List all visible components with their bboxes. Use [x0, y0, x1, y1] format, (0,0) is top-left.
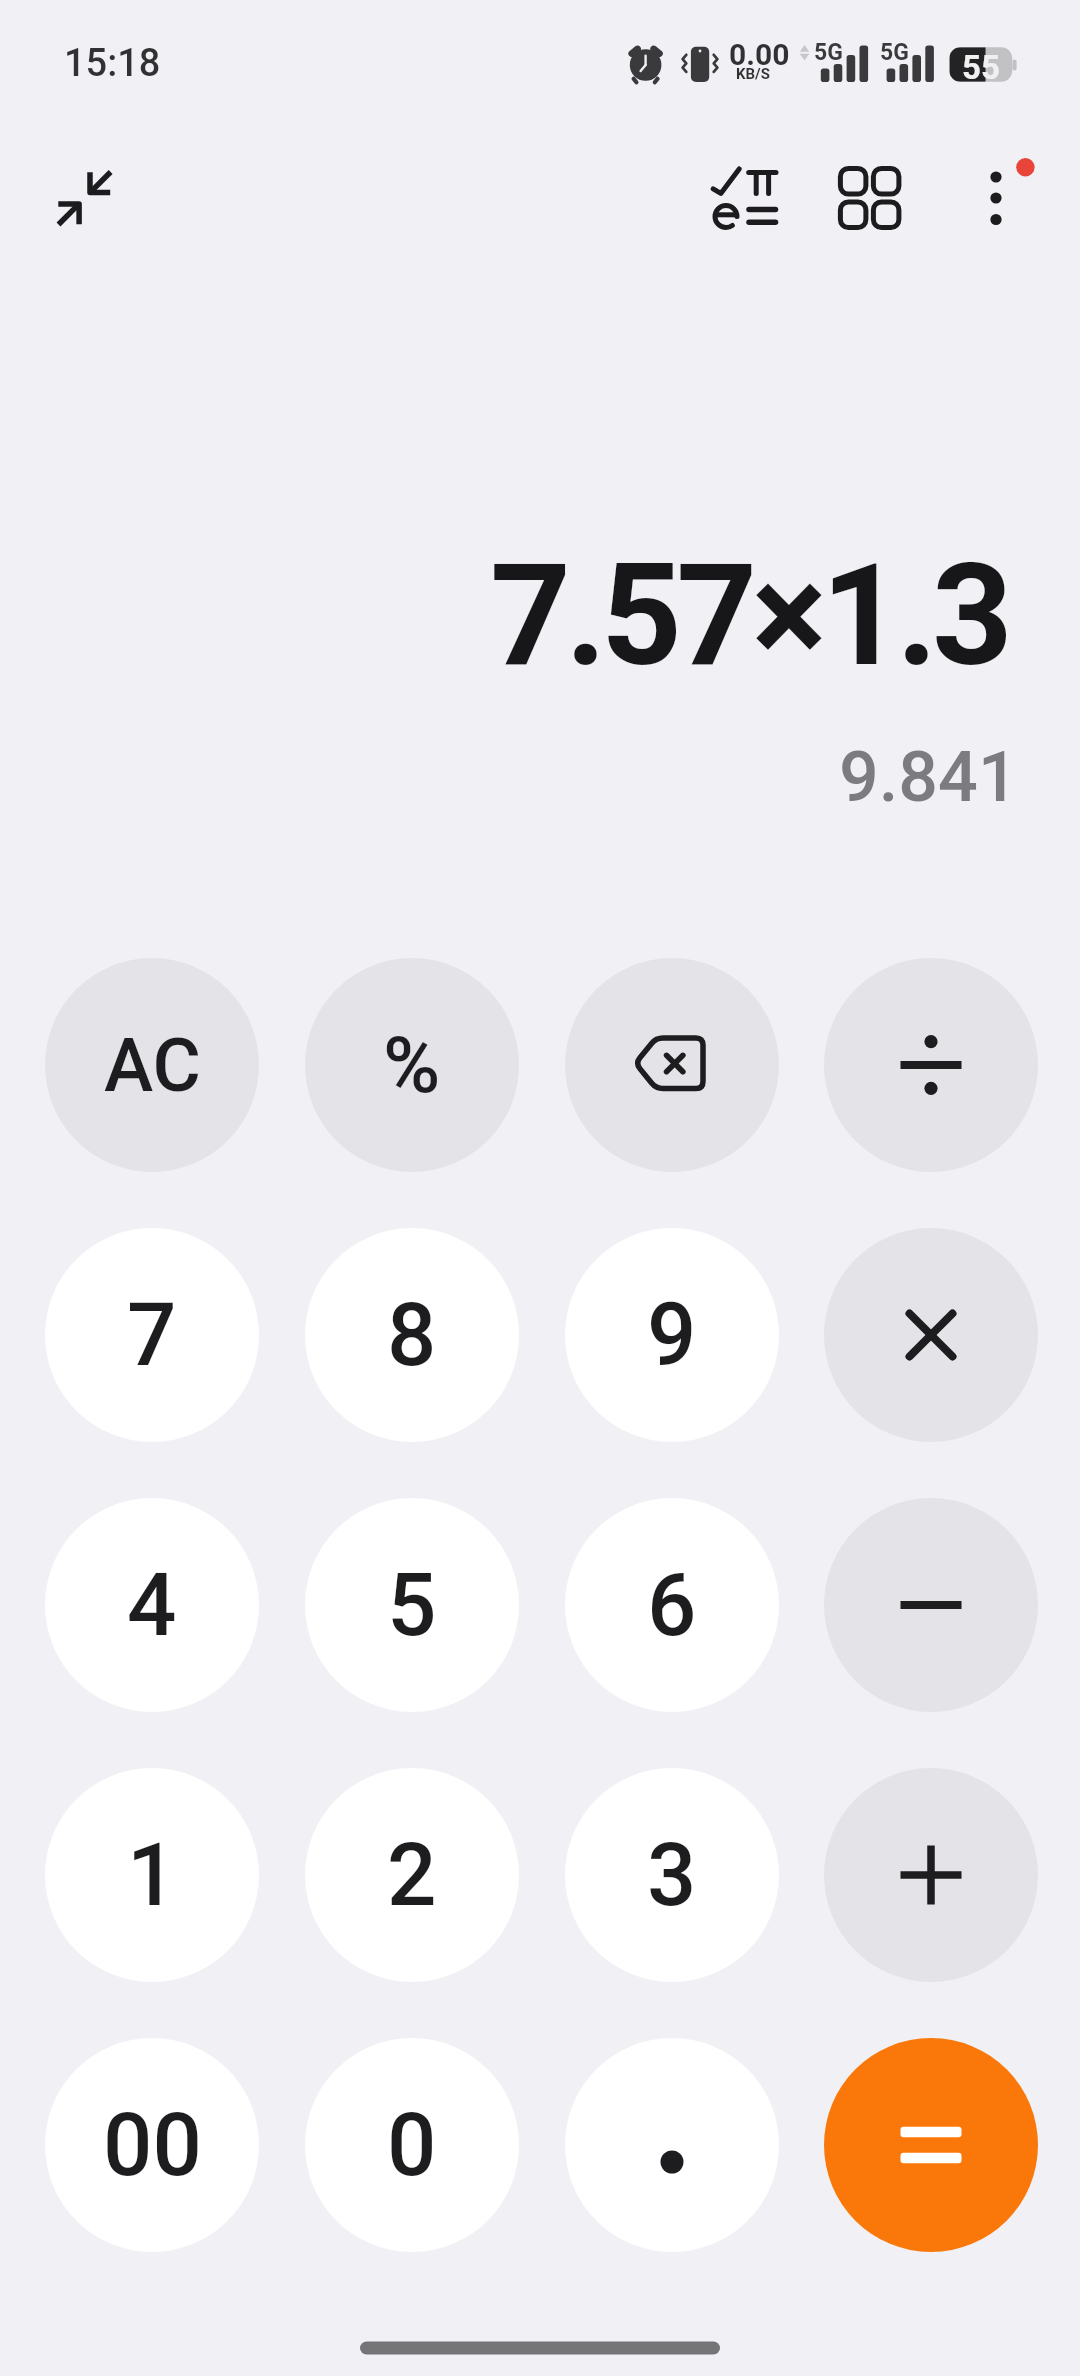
staticText: 55	[962, 48, 1000, 87]
button[interactable]: %	[305, 958, 519, 1172]
staticText: 0	[387, 2094, 437, 2196]
staticText: 7.57×1.3	[490, 533, 1008, 698]
staticText: %	[383, 1020, 441, 1111]
staticText: AC	[104, 1022, 201, 1109]
button[interactable]	[690, 158, 786, 254]
button[interactable]	[824, 1498, 1038, 1712]
staticText: 5	[387, 1554, 437, 1656]
button[interactable]: 4	[45, 1498, 259, 1712]
button[interactable]	[48, 160, 124, 236]
staticText: 5G	[880, 39, 909, 66]
button[interactable]	[360, 2330, 720, 2366]
button[interactable]: 1	[45, 1768, 259, 1982]
staticText: 6	[647, 1554, 697, 1656]
button[interactable]	[565, 2038, 779, 2252]
button[interactable]	[828, 158, 912, 242]
staticText: 1	[127, 1824, 177, 1926]
staticText: 8	[387, 1284, 437, 1386]
staticText: 3	[647, 1824, 697, 1926]
button[interactable]	[824, 1228, 1038, 1442]
button[interactable]: 6	[565, 1498, 779, 1712]
staticText: 2	[387, 1824, 437, 1926]
staticText: 9	[647, 1284, 697, 1386]
staticText: 7	[127, 1284, 177, 1386]
staticText: 9.841	[839, 736, 1018, 818]
button[interactable]: 8	[305, 1228, 519, 1442]
button[interactable]: 2	[305, 1768, 519, 1982]
button[interactable]: AC	[45, 958, 259, 1172]
staticText: 5G	[814, 39, 843, 66]
button[interactable]	[565, 958, 779, 1172]
button[interactable]	[824, 2038, 1038, 2252]
button[interactable]: 9	[565, 1228, 779, 1442]
staticText: 15:18	[64, 41, 161, 86]
button[interactable]: 7	[45, 1228, 259, 1442]
button[interactable]: 3	[565, 1768, 779, 1982]
button[interactable]	[824, 958, 1038, 1172]
button[interactable]: 0	[305, 2038, 519, 2252]
button[interactable]	[960, 158, 1040, 238]
staticText: 0.00	[729, 37, 790, 72]
button[interactable]: 5	[305, 1498, 519, 1712]
button[interactable]	[824, 1768, 1038, 1982]
staticText: 00	[103, 2094, 202, 2196]
staticText: 4	[127, 1554, 177, 1656]
button[interactable]: 00	[45, 2038, 259, 2252]
staticText: KB/S	[736, 65, 770, 83]
